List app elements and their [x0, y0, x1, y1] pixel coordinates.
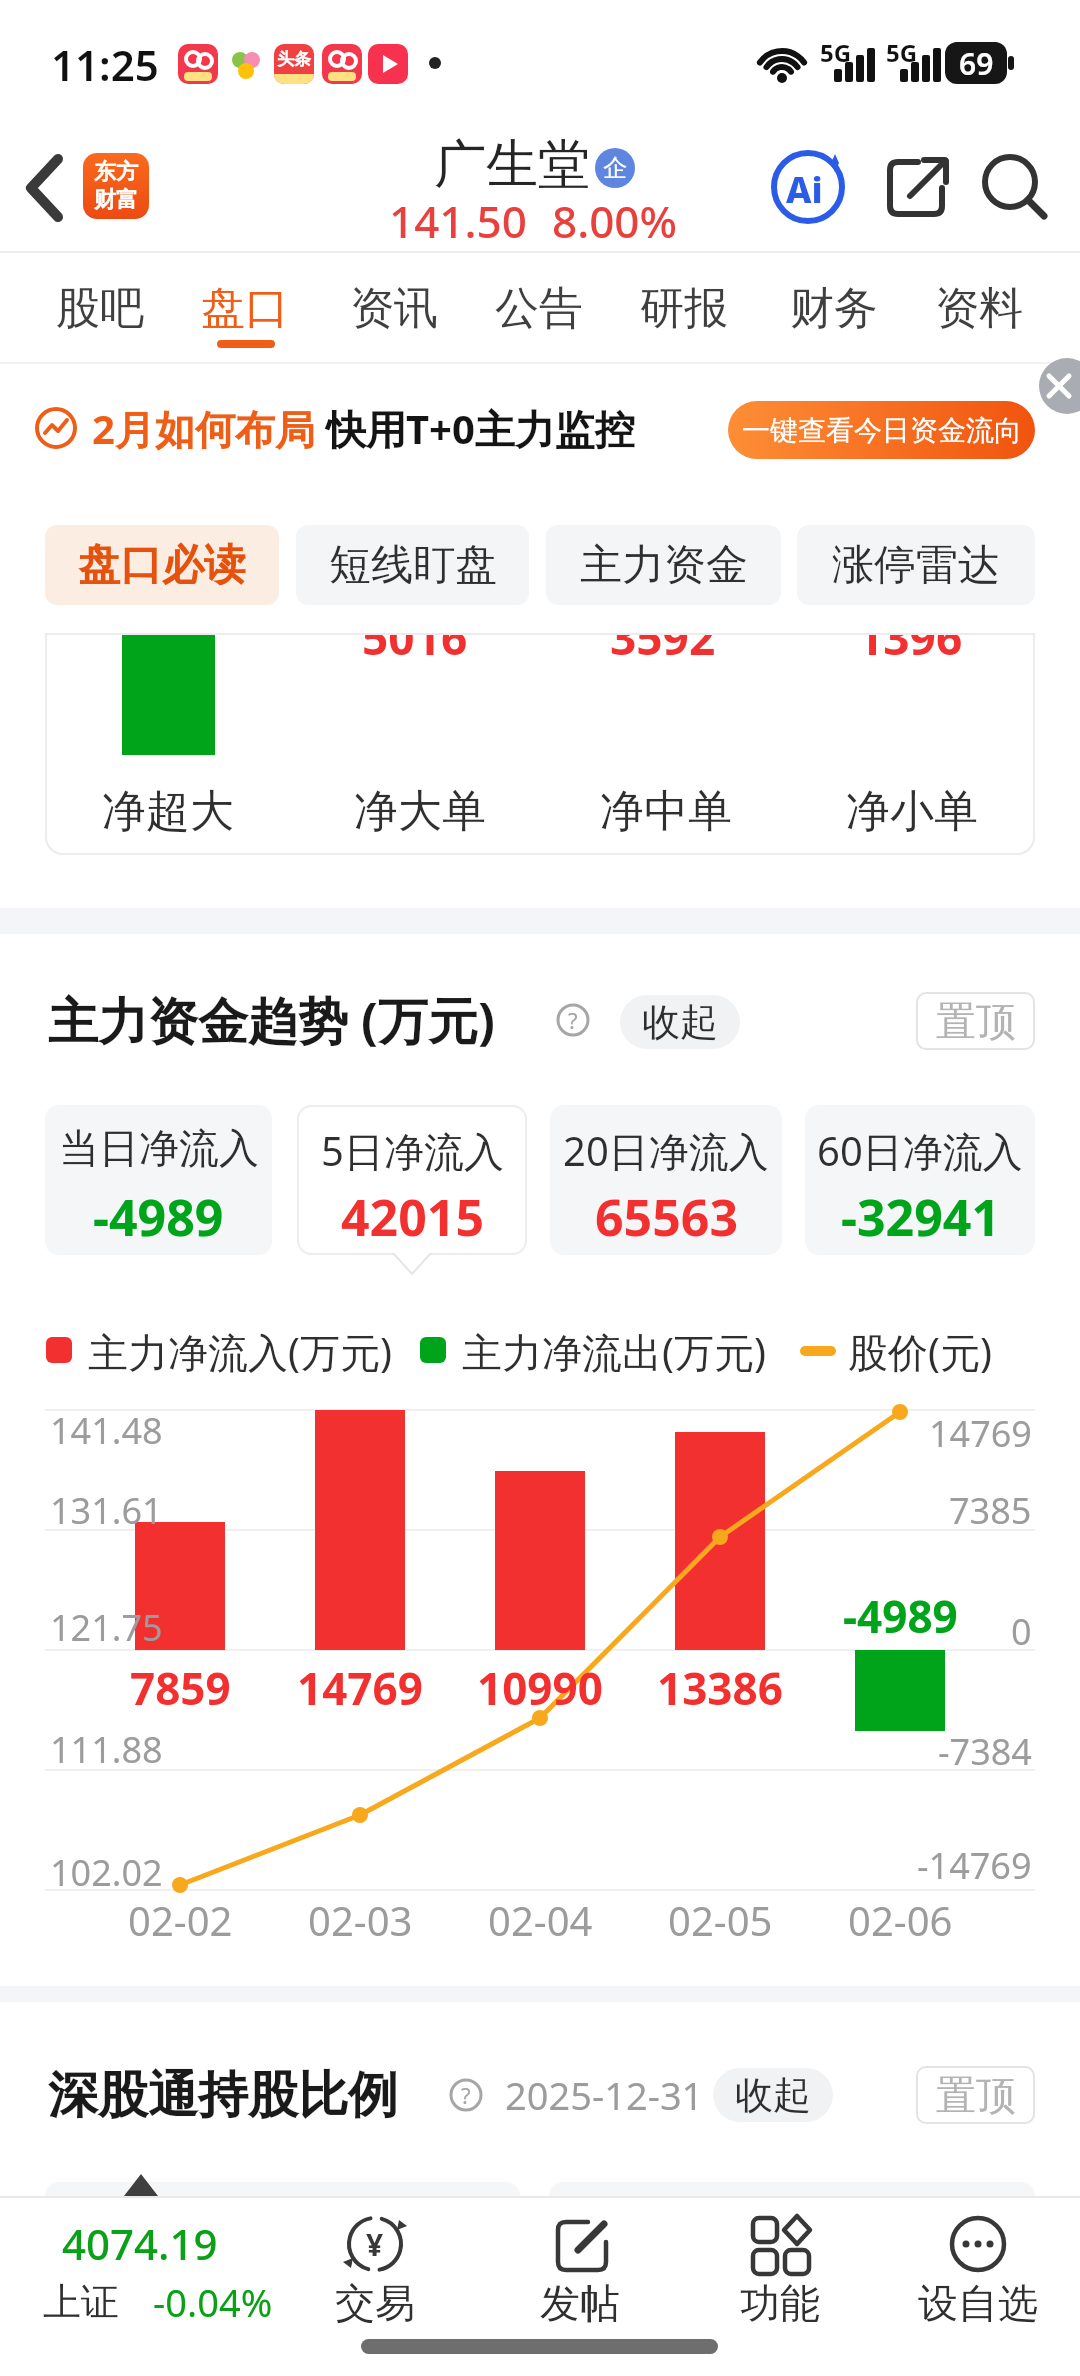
staticText: 一键查看今日资金流向	[742, 413, 1022, 448]
staticText: 5G	[820, 36, 852, 62]
button[interactable]: 置顶	[916, 2066, 1035, 2124]
staticText: 公告	[495, 281, 583, 336]
staticText: 功能	[740, 2278, 820, 2328]
button[interactable]: 股吧	[26, 272, 174, 344]
staticText: ?	[568, 1005, 578, 1035]
staticText: 短线盯盘	[329, 539, 497, 592]
button[interactable]: 60日净流入	[805, 1105, 1035, 1255]
staticText: 0	[1011, 1607, 1032, 1656]
button[interactable]: 一键查看今日资金流向	[728, 401, 1035, 459]
button[interactable]: 财务	[760, 272, 908, 344]
staticText: 141.48	[50, 1406, 163, 1455]
button[interactable]: 主力资金	[546, 525, 781, 605]
staticText: 净小单	[846, 784, 978, 839]
staticText: 上证	[43, 2278, 119, 2326]
staticText: 东方	[94, 158, 138, 186]
staticText: 14769	[297, 1658, 423, 1718]
staticText: 7859	[130, 1658, 231, 1718]
staticText: 4074.19	[62, 2215, 218, 2272]
staticText: -7384	[938, 1727, 1032, 1776]
button[interactable]	[1036, 358, 1080, 414]
button[interactable]	[22, 155, 70, 225]
staticText: 2025-12-31	[505, 2069, 704, 2121]
button[interactable]: 收起	[620, 995, 740, 1049]
staticText: ?	[461, 2080, 471, 2110]
button[interactable]	[886, 156, 950, 220]
staticText: 主力净流出(万元)	[462, 1324, 766, 1379]
button[interactable]	[515, 2204, 645, 2334]
staticText: -0.04%	[153, 2276, 273, 2328]
staticText: 131.61	[50, 1486, 163, 1535]
staticText: 净超大	[102, 784, 234, 839]
button[interactable]: 盘口	[171, 272, 319, 344]
staticText: 5016	[362, 633, 468, 669]
staticText: 5G	[886, 36, 918, 62]
staticText: 头条	[277, 49, 311, 70]
staticText: 主力资金	[580, 539, 748, 592]
staticText: 60日净流入	[817, 1123, 1023, 1173]
staticText: 股价(元)	[848, 1324, 992, 1379]
staticText: 净中单	[600, 784, 732, 839]
staticText: 65563	[595, 1183, 738, 1241]
staticText: 02-02	[128, 1893, 233, 1947]
button[interactable]: 资料	[905, 272, 1053, 344]
staticText: 广生堂	[434, 132, 590, 198]
button[interactable]	[715, 2204, 845, 2334]
staticText: 102.02	[50, 1848, 163, 1897]
staticText: 5日净流入	[321, 1123, 504, 1173]
staticText: 121.75	[50, 1603, 163, 1652]
staticText: 主力资金趋势 (万元)	[48, 986, 495, 1054]
staticText: 财富	[94, 186, 138, 214]
staticText: 111.88	[50, 1725, 163, 1774]
button[interactable]	[980, 152, 1050, 222]
staticText: 11:25	[51, 36, 159, 93]
staticText: ¥	[366, 2224, 384, 2265]
button[interactable]: 置顶	[916, 992, 1035, 1050]
staticText: 设自选	[918, 2278, 1038, 2328]
staticText: 收起	[735, 2071, 811, 2119]
staticText: 7385	[949, 1486, 1032, 1535]
staticText: 置顶	[936, 996, 1016, 1046]
button[interactable]: 收起	[713, 2068, 833, 2122]
button[interactable]: 盘口必读	[45, 525, 279, 605]
button[interactable]	[771, 150, 845, 224]
staticText: 企	[603, 153, 627, 183]
staticText: 置顶	[936, 2070, 1016, 2120]
button[interactable]: 短线盯盘	[296, 525, 529, 605]
staticText: 2月如何布局	[92, 401, 315, 456]
button[interactable]: 公告	[465, 272, 613, 344]
button[interactable]: 研报	[610, 272, 758, 344]
staticText: 14769	[929, 1409, 1032, 1458]
staticText: 深股通持股比例	[48, 2064, 398, 2127]
button[interactable]: 当日净流入	[45, 1105, 272, 1255]
staticText: 资料	[935, 281, 1023, 336]
button[interactable]	[310, 2204, 440, 2334]
staticText: 盘口必读	[78, 539, 246, 592]
staticText: 20日净流入	[563, 1123, 769, 1173]
staticText: 发帖	[540, 2278, 620, 2328]
staticText: 13386	[657, 1658, 783, 1718]
button[interactable]: 涨停雷达	[797, 525, 1035, 605]
staticText: 1396	[857, 633, 963, 669]
staticText: 研报	[640, 281, 728, 336]
staticText: 净大单	[354, 784, 486, 839]
staticText: 涨停雷达	[832, 539, 1000, 592]
staticText: 资讯	[350, 281, 438, 336]
staticText: 收起	[642, 998, 718, 1046]
staticText: 快用T+0主力监控	[326, 401, 635, 456]
staticText: 股吧	[56, 281, 144, 336]
button[interactable]	[913, 2204, 1043, 2334]
staticText: Ai	[786, 165, 823, 214]
staticText: 财务	[790, 281, 878, 336]
staticText: 42015	[341, 1183, 484, 1241]
staticText: 02-04	[488, 1893, 593, 1947]
button[interactable]: 20日净流入	[550, 1105, 782, 1255]
staticText: 盘口	[201, 281, 289, 336]
button[interactable]	[30, 2210, 280, 2330]
button[interactable]: 资讯	[320, 272, 468, 344]
button[interactable]: 5日净流入	[297, 1105, 527, 1255]
staticText: -14769	[917, 1841, 1032, 1890]
staticText: 10990	[477, 1658, 603, 1718]
staticText: 3592	[610, 633, 716, 669]
button[interactable]: 东方	[83, 153, 149, 219]
